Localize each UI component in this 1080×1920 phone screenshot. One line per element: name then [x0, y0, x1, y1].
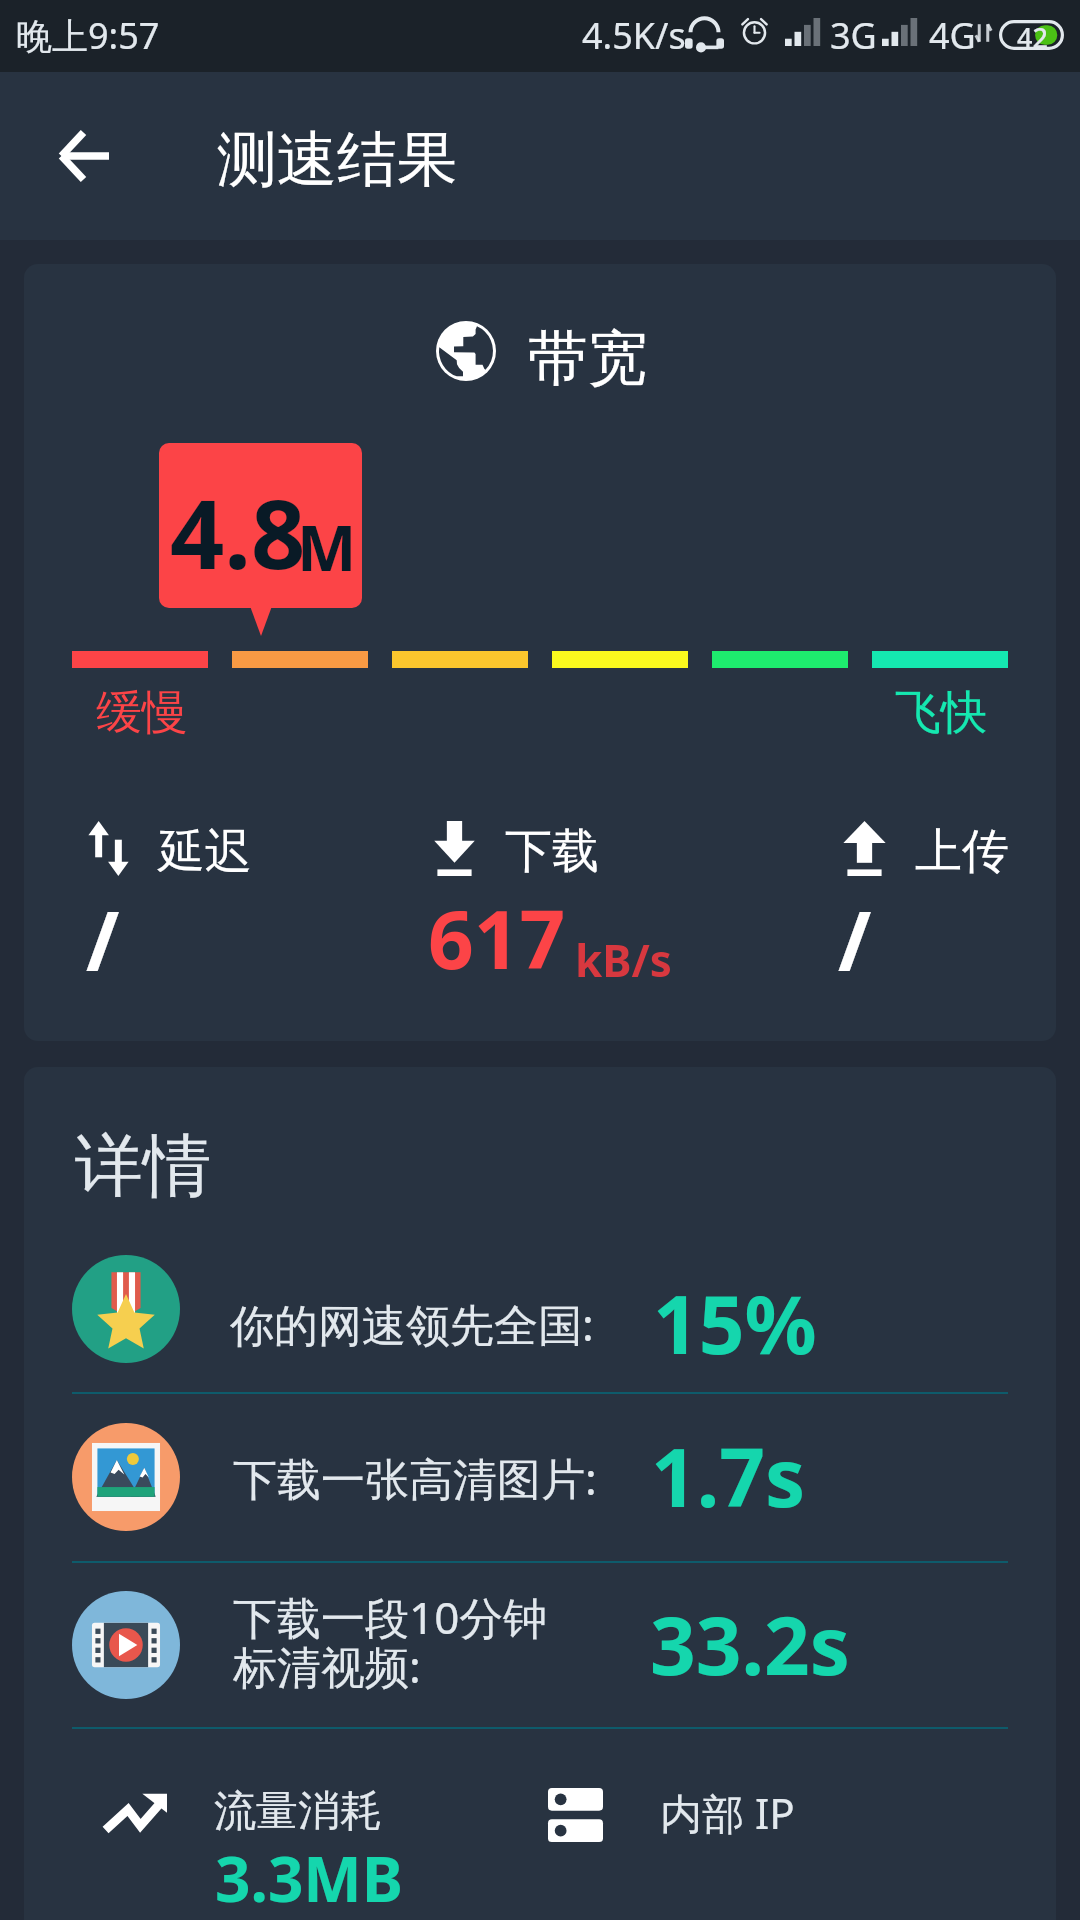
staticText: 缓慢	[96, 684, 188, 742]
staticText: 晚上9:57	[16, 11, 160, 60]
button[interactable]: 流量消耗	[72, 1770, 492, 1918]
staticText: 42	[1017, 19, 1048, 49]
staticText: 延迟	[158, 822, 252, 881]
staticText: 流量消耗	[214, 1785, 382, 1838]
button[interactable]: 内部 IP	[520, 1770, 840, 1862]
staticText: kB/s	[575, 930, 672, 990]
staticText: 3G	[830, 11, 877, 60]
button[interactable]: Back	[28, 88, 140, 224]
button[interactable]: 下载一张高清图片:	[48, 1414, 1032, 1542]
staticText: 4.8	[170, 467, 306, 596]
staticText: 你的网速领先全国:	[230, 1294, 594, 1354]
staticText: 1.7s	[651, 1421, 806, 1530]
staticText: 测速结果	[217, 122, 457, 198]
staticText: 带宽	[528, 321, 648, 397]
staticText: 标清视频:	[233, 1636, 421, 1696]
button[interactable]: 下载一段10分钟	[48, 1582, 1032, 1712]
staticText: 飞快	[895, 684, 987, 742]
button[interactable]: 你的网速领先全国:	[48, 1245, 1032, 1373]
staticText: 下载一段10分钟	[233, 1587, 548, 1647]
staticText: 下载	[505, 822, 599, 881]
staticText: /	[838, 885, 872, 994]
staticText: 下载一张高清图片:	[233, 1448, 597, 1508]
staticText: 内部 IP	[660, 1784, 795, 1841]
staticText: 617	[428, 883, 566, 992]
staticText: 4G	[929, 11, 976, 60]
staticText: 4.5K/s	[582, 11, 686, 60]
staticText: 3.3MB	[215, 1836, 404, 1920]
staticText: M	[297, 504, 357, 590]
staticText: 详情	[75, 1124, 211, 1210]
staticText: 15%	[653, 1268, 817, 1377]
staticText: 上传	[915, 822, 1009, 881]
staticText: /	[86, 885, 120, 994]
staticText: 33.2s	[650, 1589, 850, 1698]
